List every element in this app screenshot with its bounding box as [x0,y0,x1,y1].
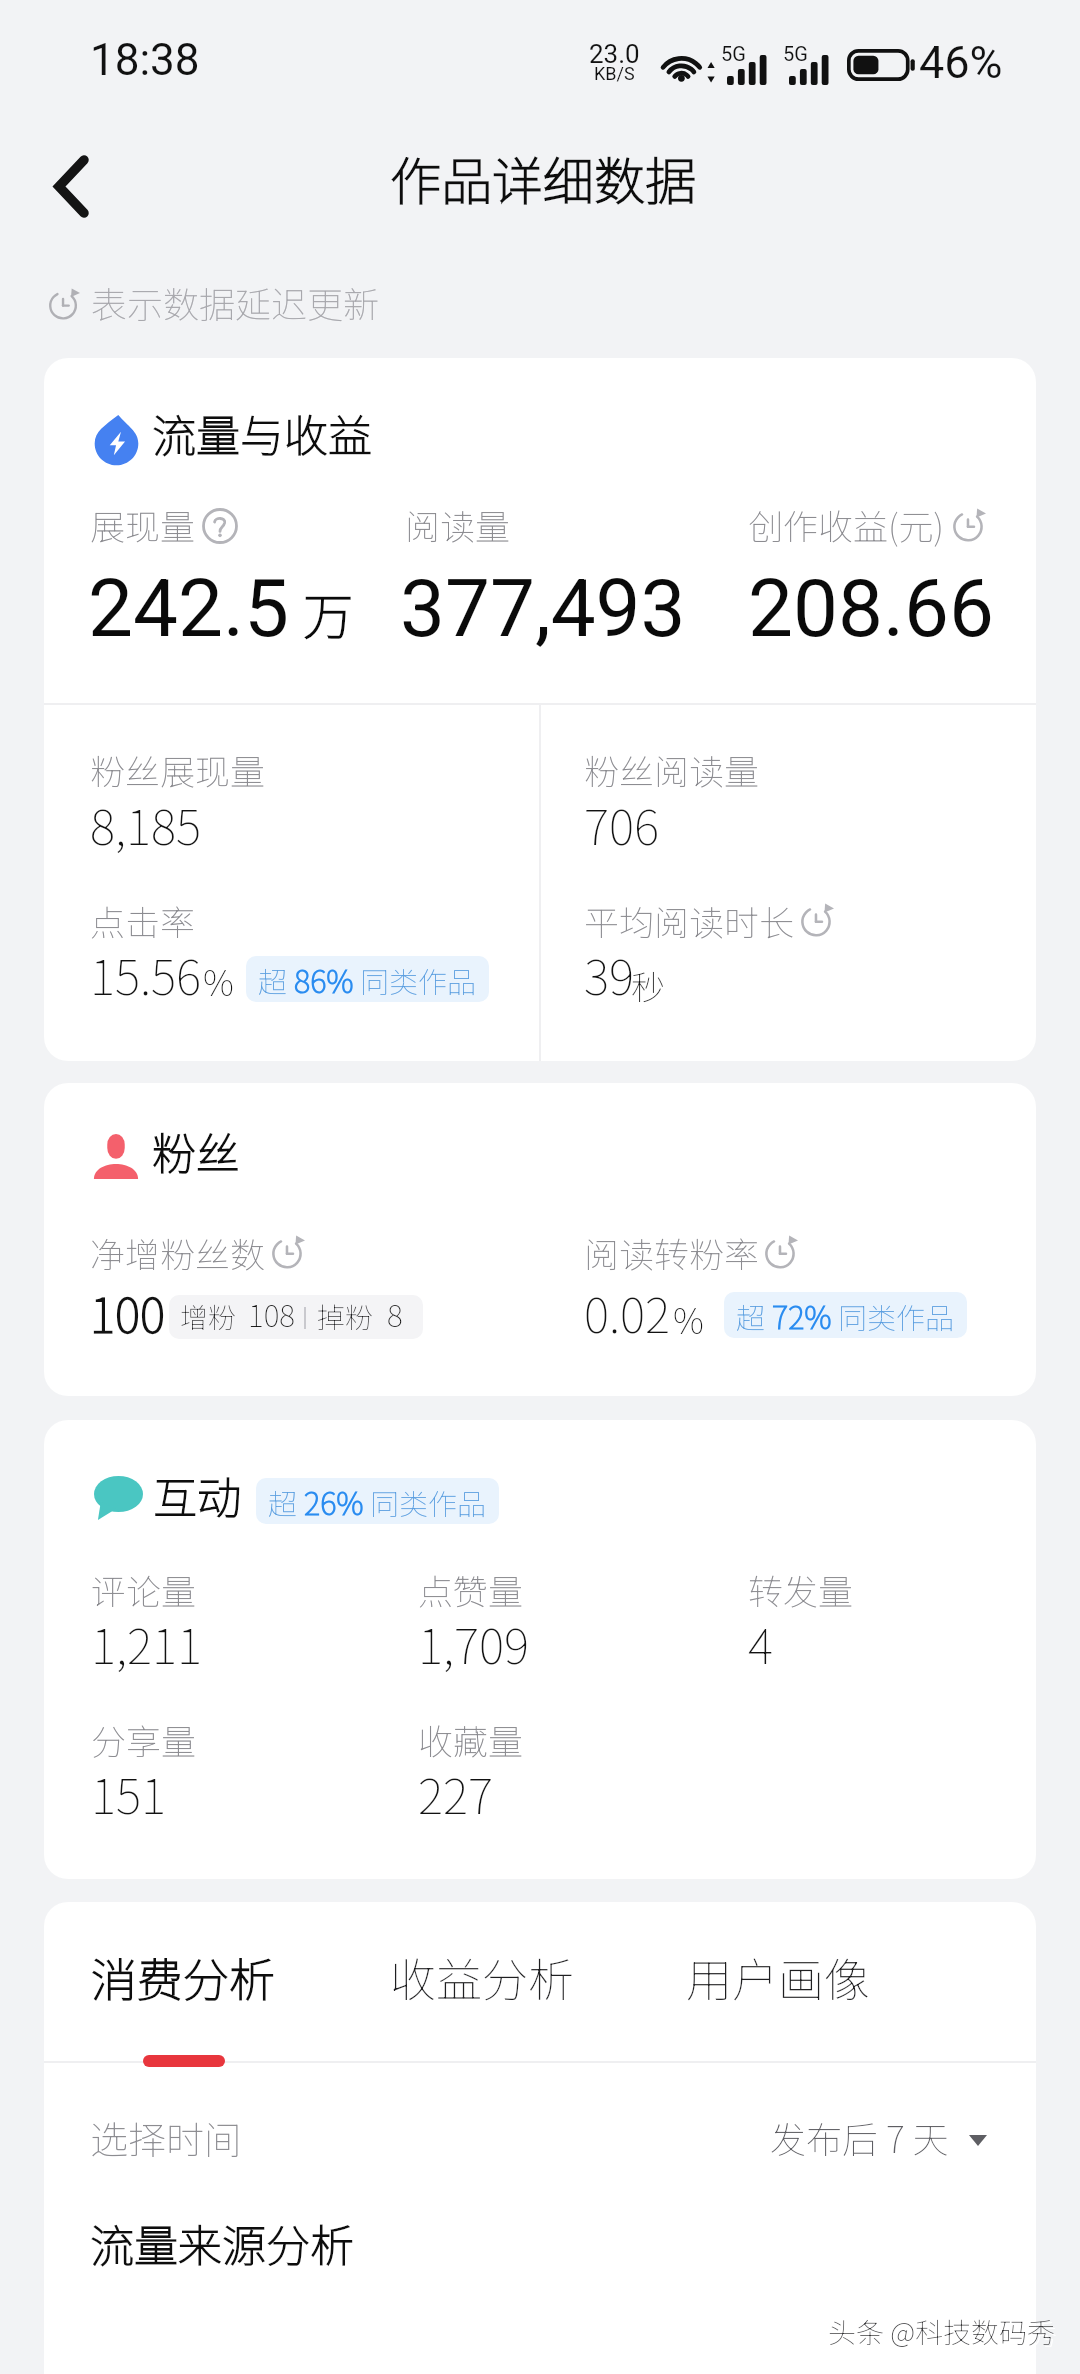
staticText: 阅读量 [405,499,511,550]
staticText: 用户画像 [686,1944,870,2011]
staticText: 同类作品 [838,1295,955,1337]
staticText: 选择时间 [90,2110,243,2165]
staticText: 收藏量 [418,1714,524,1765]
staticText: 平均阅读时长 [584,895,795,946]
staticText: 掉粉 [317,1296,374,1337]
staticText: 超 [258,959,288,1001]
staticText: 8 [387,1295,403,1335]
staticText: 1,211 [91,1608,203,1678]
staticText: 发布后 7 天 [770,2111,949,2163]
staticText: 242.5 [88,562,289,656]
staticText: 151 [91,1758,167,1828]
staticText: 评论量 [91,1564,197,1615]
staticText: 分享量 [91,1714,197,1765]
staticText: 秒 [631,961,665,1010]
button[interactable]: Back [16,128,126,244]
staticText: 流量与收益 [152,401,372,465]
staticText: 转发量 [748,1564,854,1615]
staticText: 706 [584,789,660,859]
staticText: 增粉 [180,1296,237,1337]
staticText: 粉丝 [152,1119,240,1183]
staticText: 表示数据延迟更新 [91,276,380,328]
staticText: 15.56 [90,939,202,1009]
staticText: % [673,1293,704,1344]
staticText: 互动 [153,1463,241,1527]
staticText: 0.02 [584,1277,671,1347]
staticText: 点击率 [90,895,196,946]
staticText: 72% [772,1293,832,1338]
staticText: 头条 @科技数码秀 [828,2311,1055,2352]
staticText: 点赞量 [418,1564,524,1615]
staticText: 208.66 [748,562,994,656]
staticText: 同类作品 [370,1481,487,1523]
staticText: 阅读转粉率 [584,1227,760,1278]
staticText: 收益分析 [390,1944,574,2011]
staticText: 377,493 [400,562,686,656]
button[interactable]: 消费分析 [83,1925,283,2029]
staticText: % [203,955,234,1006]
staticText: 粉丝阅读量 [584,744,760,795]
staticText: 创作收益(元) [748,499,944,550]
staticText: 超 [736,1295,766,1337]
staticText: 4 [748,1608,774,1678]
staticText: 消费分析 [91,1944,275,2011]
staticText: KB/S [594,63,635,84]
staticText: 23.0 [589,39,640,69]
staticText: 227 [418,1758,494,1828]
staticText: 超 [268,1481,298,1523]
staticText: 作品详细数据 [390,141,697,215]
staticText: 头条 @科技数码秀 [830,2313,1057,2354]
staticText: 5G [721,42,746,65]
staticText: 流量来源分析 [90,2211,354,2275]
staticText: 万 [303,577,353,649]
staticText: 展现量 [90,499,196,550]
staticText: 100 [90,1277,166,1347]
staticText: 26% [304,1479,364,1524]
staticText: 粉丝展现量 [90,744,266,795]
button[interactable]: 收益分析 [382,1925,582,2029]
button[interactable]: 发布后 7 天 [744,2098,992,2164]
staticText: 18:38 [90,34,200,86]
staticText: 同类作品 [360,959,477,1001]
staticText: 86% [294,957,354,1002]
staticText: 39 [584,939,635,1009]
staticText: 1,709 [418,1608,530,1678]
staticText: 8,185 [90,789,202,859]
staticText: 46% [919,36,1003,89]
button[interactable]: 用户画像 [678,1925,878,2029]
staticText: 净增粉丝数 [90,1227,266,1278]
staticText: 108 [248,1295,295,1335]
staticText: 5G [783,42,808,65]
